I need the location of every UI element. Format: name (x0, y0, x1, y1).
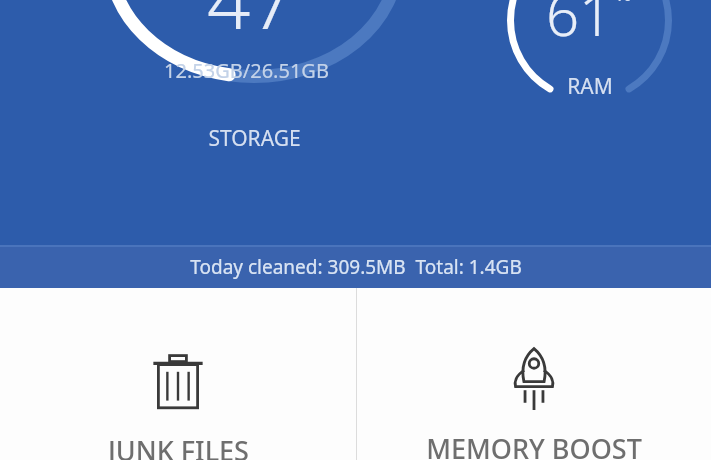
button[interactable]: Today cleaned: 309.5MB Total: 1.4GB (0, 245, 711, 288)
staticText: RAM (567, 72, 613, 101)
staticText: MEMORY BOOST (426, 430, 642, 460)
staticText: Today cleaned: 309.5MB Total: 1.4GB (190, 254, 522, 280)
staticText: STORAGE (208, 124, 301, 153)
staticText: % (615, 0, 632, 7)
staticText: JUNK FILES (108, 432, 249, 460)
staticText: 61 (546, 0, 613, 53)
button[interactable]: Memory Boost (357, 288, 711, 460)
staticText: 47 (207, 0, 294, 52)
other: Junk Files (150, 352, 206, 412)
staticText: 12.53GB/26.51GB (164, 57, 329, 84)
other: Memory Boost (506, 346, 562, 412)
button[interactable]: Junk Files (0, 288, 356, 460)
